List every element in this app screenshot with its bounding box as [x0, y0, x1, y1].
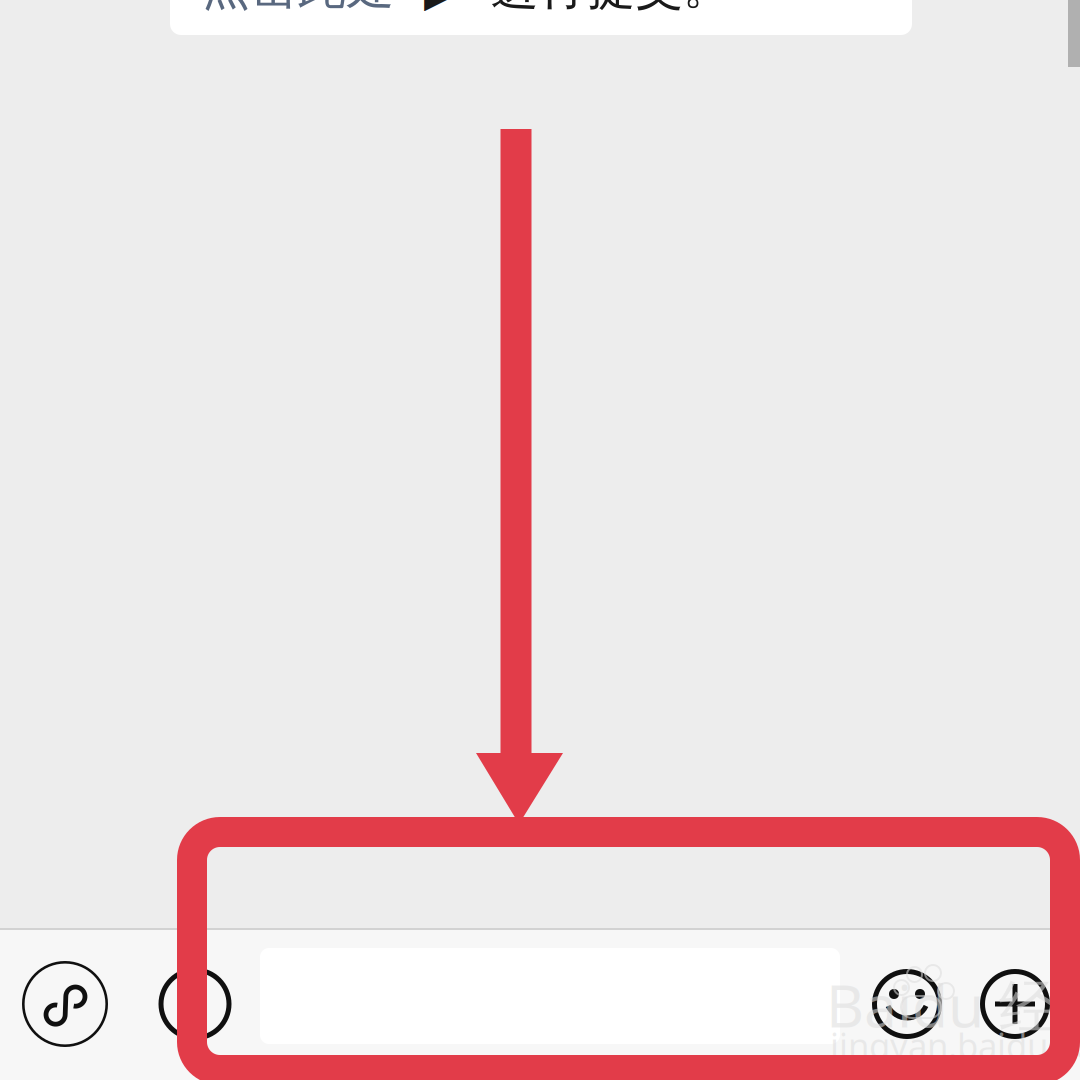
staticText: jingyan.baidu.com	[830, 1022, 1080, 1068]
button[interactable]: Voice input	[130, 928, 260, 1080]
staticText: ▶ 进行提交。	[394, 0, 731, 16]
staticText: 点击此处	[202, 0, 394, 16]
button[interactable]: Message input field	[260, 928, 872, 1080]
button[interactable]: More	[980, 928, 1080, 1080]
button[interactable]: Emoji	[872, 928, 980, 1080]
staticText: Baidu 经验	[826, 966, 1080, 1044]
button[interactable]: Mini Programs	[0, 928, 130, 1080]
